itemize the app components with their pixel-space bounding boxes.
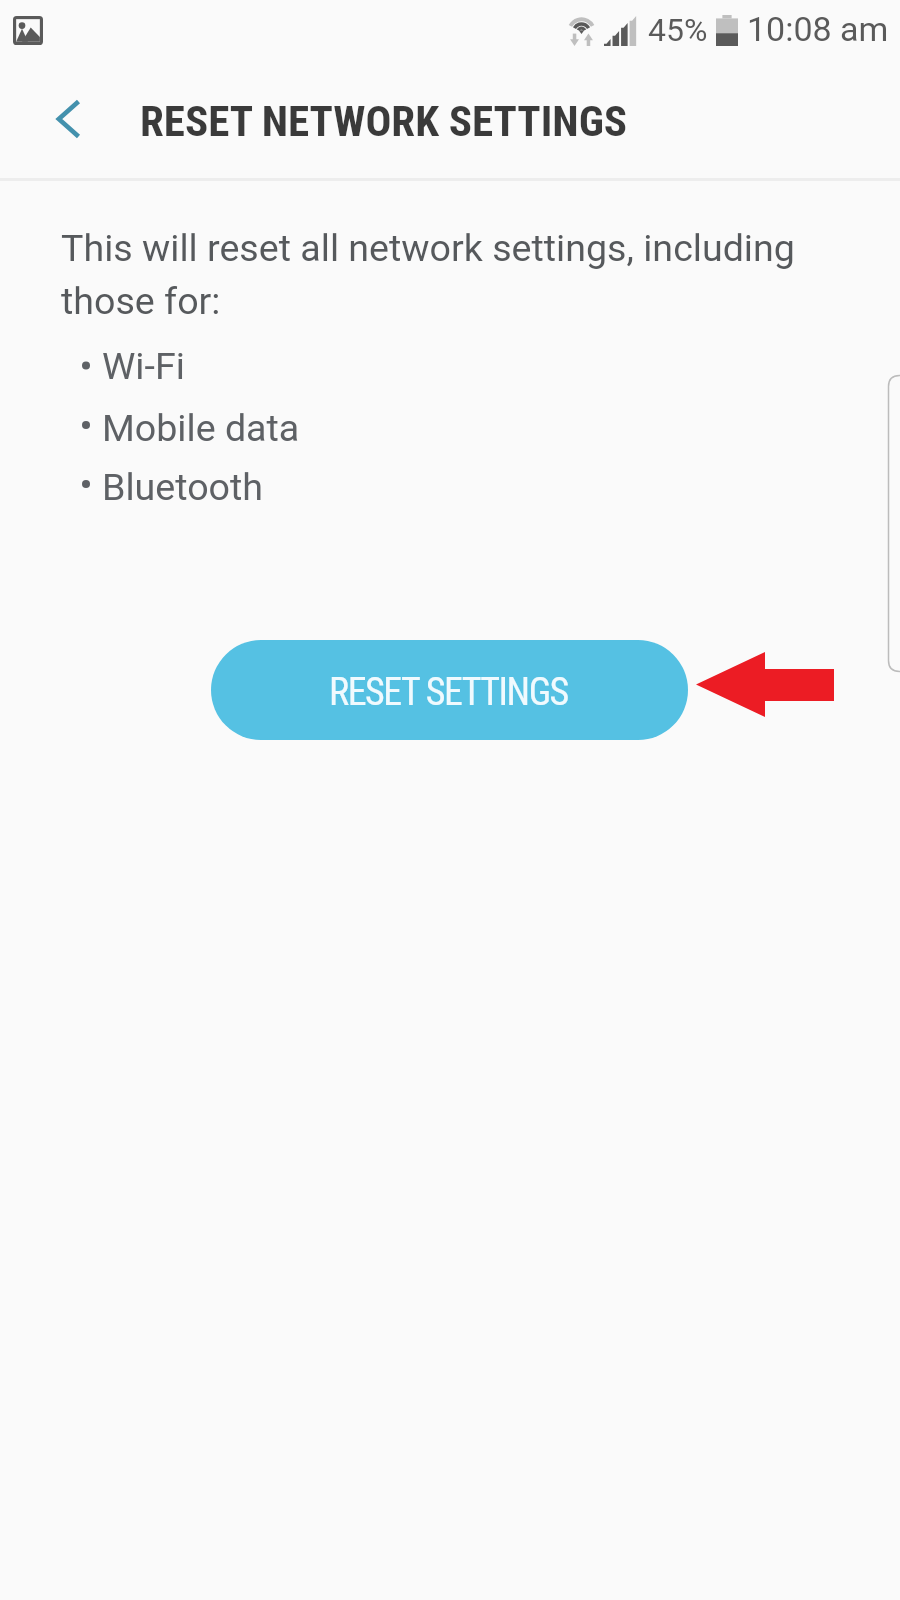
- staticText: 10:08 am: [747, 9, 889, 49]
- staticText: RESET NETWORK SETTINGS: [140, 96, 628, 146]
- other: Screenshot captured: [13, 16, 43, 45]
- staticText: This will reset all network settings, in…: [61, 226, 806, 324]
- staticText: RESET SETTINGS: [329, 670, 568, 715]
- button[interactable]: Wi-Fi: [0, 344, 900, 402]
- button[interactable]: Mobile data: [0, 406, 900, 464]
- staticText: Wi-Fi: [102, 344, 185, 388]
- staticText: Bluetooth: [102, 465, 264, 509]
- staticText: 45%: [648, 11, 708, 49]
- button[interactable]: Bluetooth: [0, 465, 900, 523]
- button[interactable]: Navigate up: [36, 85, 104, 153]
- button[interactable]: RESET SETTINGS: [211, 640, 688, 740]
- staticText: Mobile data: [102, 406, 300, 450]
